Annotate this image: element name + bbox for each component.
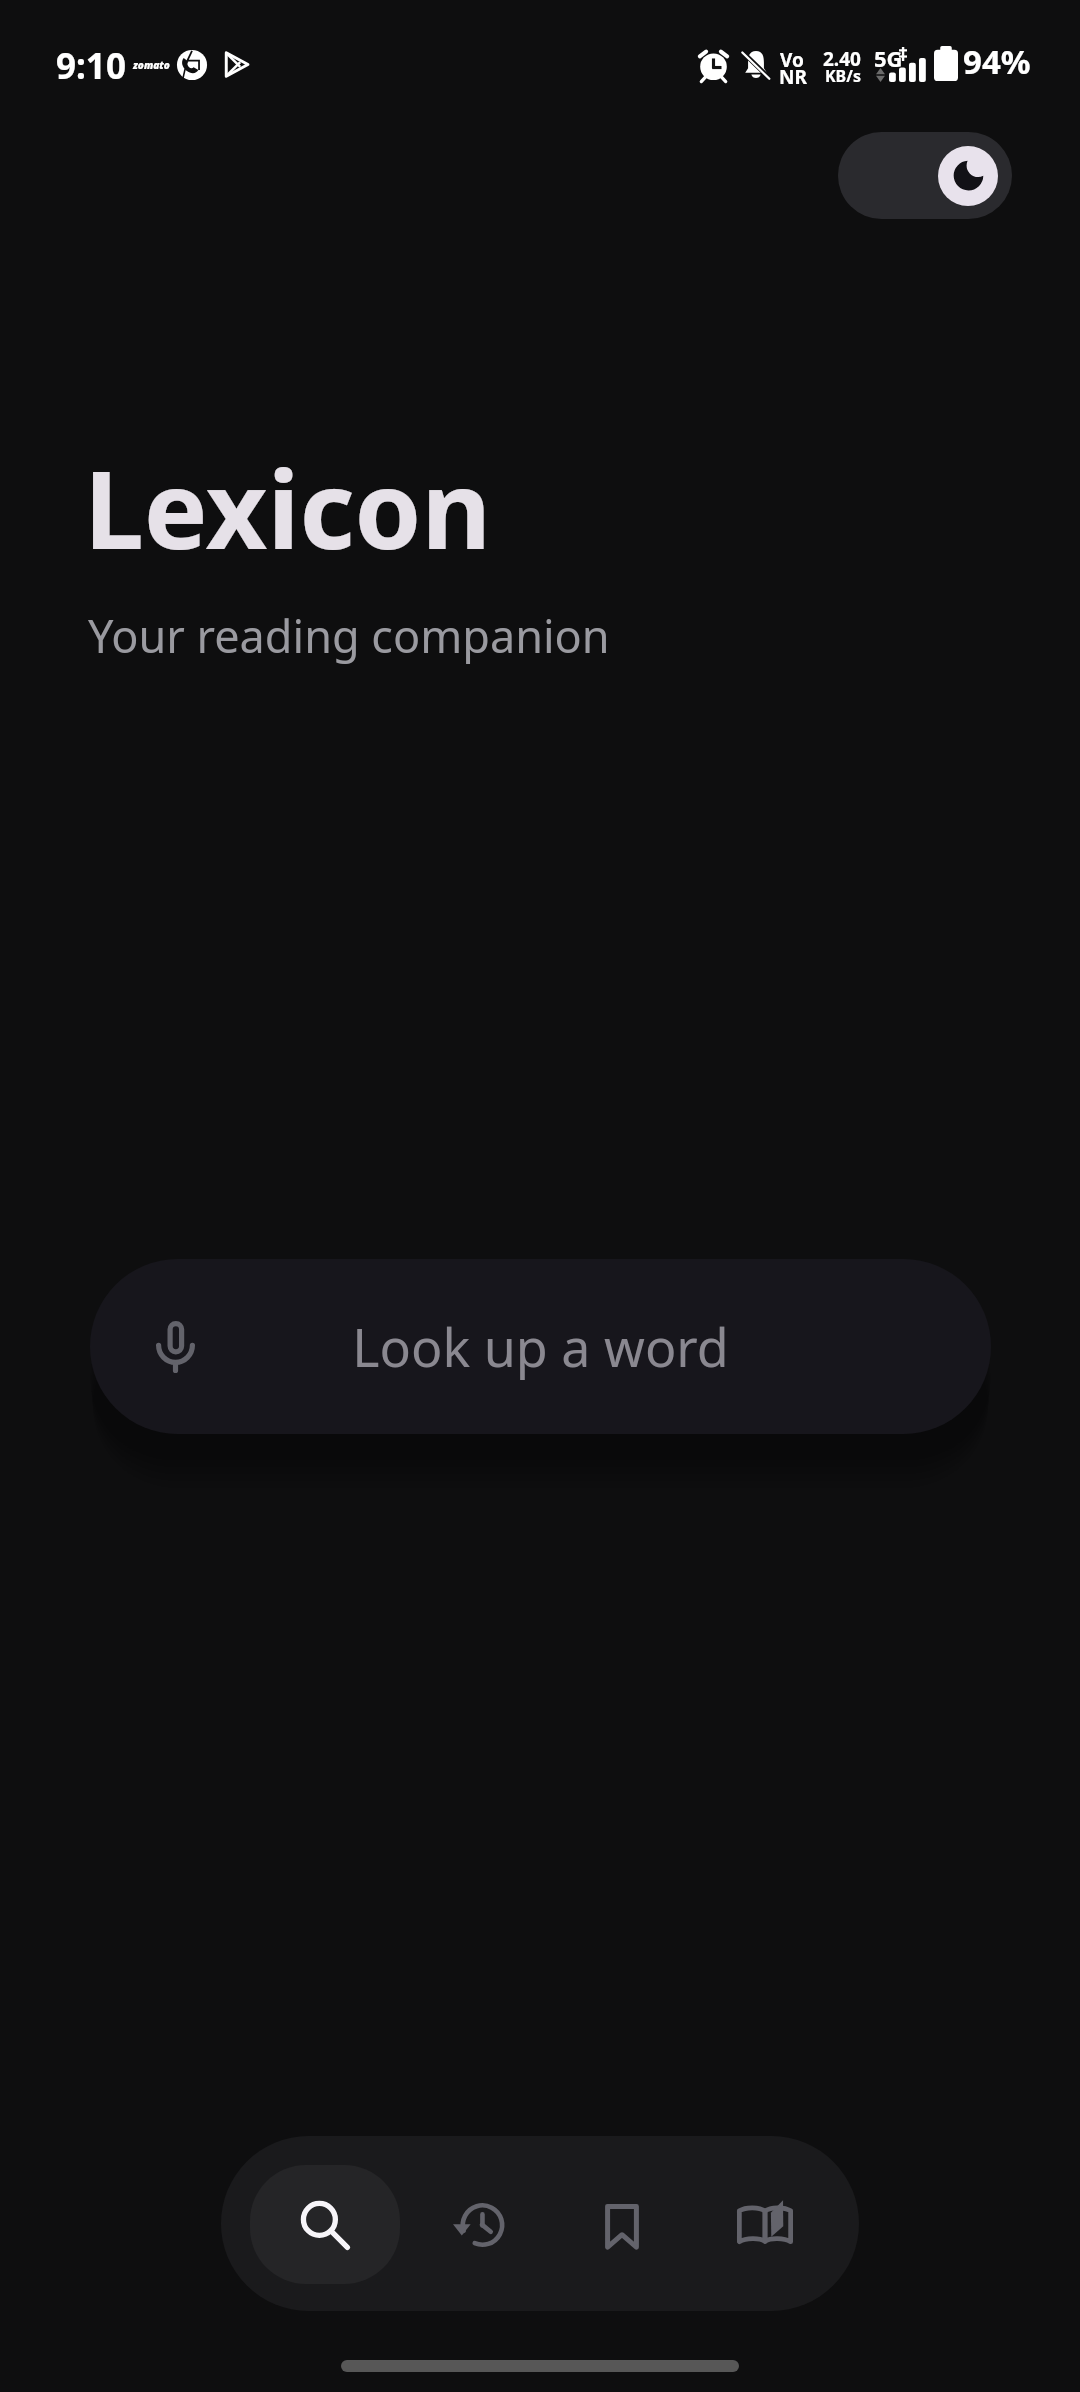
button[interactable]: Bookmarks [562, 2165, 682, 2284]
button[interactable]: Toggle dark mode [838, 132, 1012, 219]
button[interactable]: Dictionary [705, 2165, 825, 2284]
staticText: zomato [133, 58, 170, 72]
staticText: KB/s [825, 65, 861, 87]
button[interactable]: History [417, 2165, 537, 2284]
staticText: 2.40 [823, 46, 861, 72]
staticText: Your reading companion [88, 605, 610, 666]
staticText: 5G [874, 43, 903, 73]
staticText: Vo [780, 47, 804, 73]
staticText: Lexicon [84, 435, 492, 581]
button[interactable]: Look up a word [90, 1259, 991, 1434]
staticText: 9:10 [56, 42, 126, 90]
staticText: NR [779, 64, 807, 90]
button[interactable]: Search [250, 2165, 400, 2284]
staticText: 94% [963, 39, 1031, 84]
staticText: Look up a word [352, 1311, 729, 1382]
